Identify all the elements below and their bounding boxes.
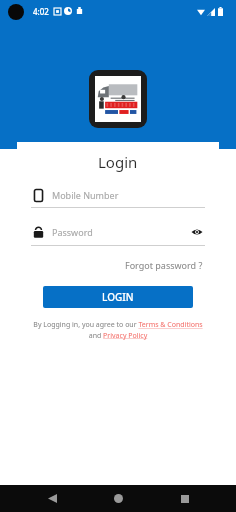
staticText: 4:02 (33, 6, 49, 17)
staticText: Mobile Number (52, 189, 205, 201)
staticText: Login (98, 152, 138, 172)
button[interactable]: Password (31, 224, 205, 246)
other: Mobile number (31, 188, 45, 202)
staticText: Password (52, 226, 189, 238)
staticText: Forgot password ? (125, 259, 203, 271)
button[interactable]: LOGIN (43, 286, 193, 308)
button[interactable]: Recent apps (170, 485, 200, 512)
button[interactable]: Back (37, 485, 67, 512)
button[interactable]: Mobile number (31, 188, 205, 208)
staticText: LOGIN (102, 290, 134, 304)
button[interactable]: Forgot password ? (123, 256, 205, 274)
staticText: By Logging in, you agree to our Terms & … (31, 320, 205, 340)
other: Password (31, 225, 45, 239)
button[interactable]: Show password (189, 224, 205, 240)
button[interactable]: Home (103, 485, 133, 512)
